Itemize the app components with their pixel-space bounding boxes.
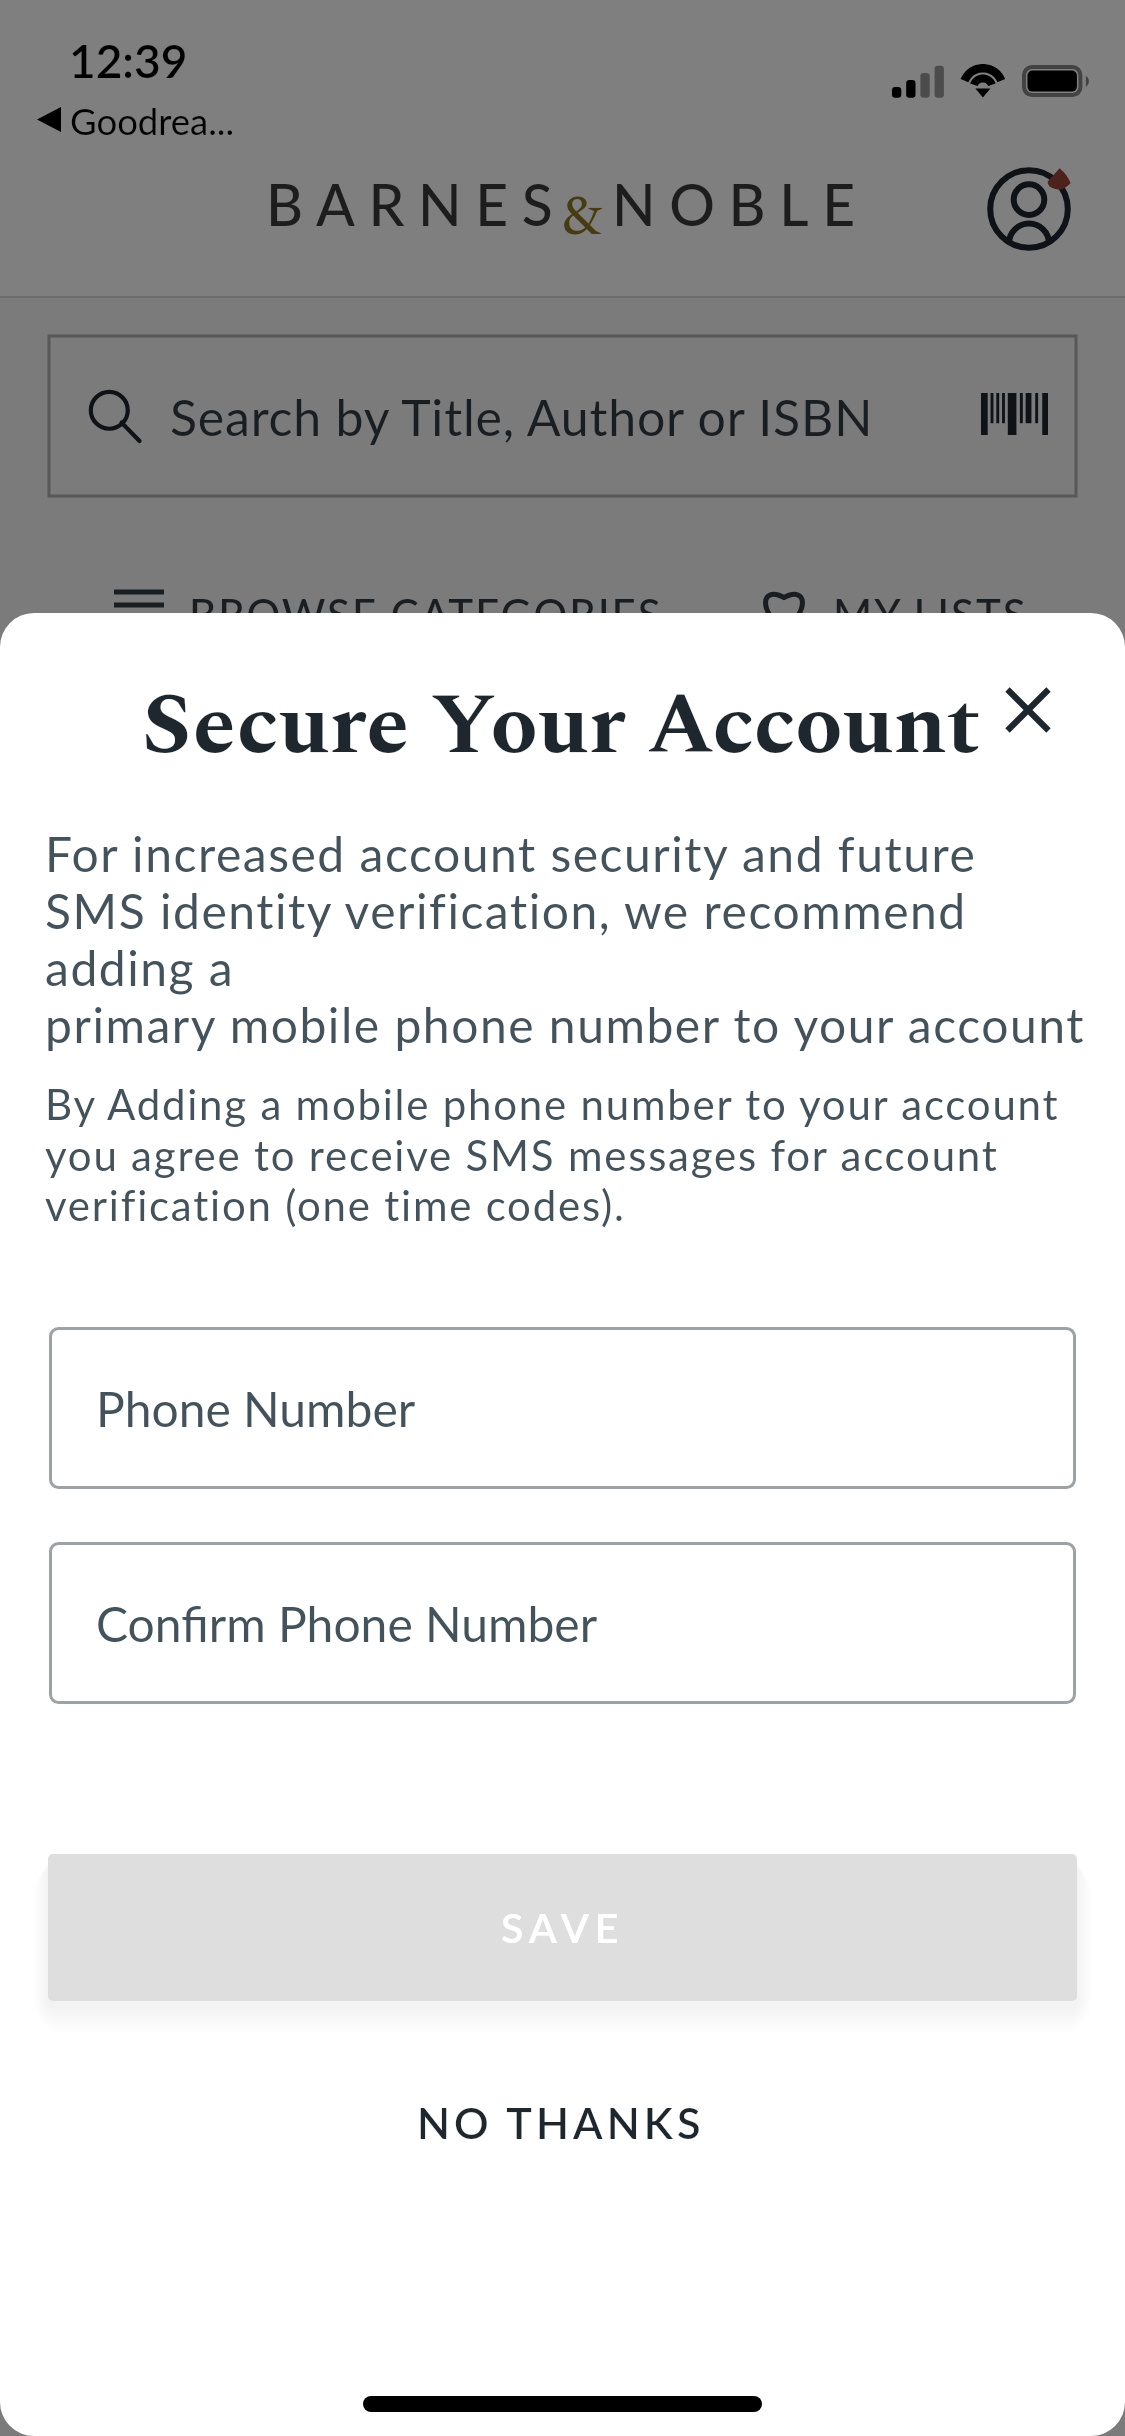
staticText: BROWSE CATEGORIES [189,589,663,639]
button[interactable]: Phone Number [49,1327,1076,1489]
button[interactable]: NO THANKS [358,2083,763,2163]
staticText: MY LISTS [833,589,1028,639]
button[interactable]: Search [49,336,1076,496]
staticText: SAVE [501,1903,625,1952]
staticText: BARNES [266,170,567,238]
staticText: & [563,175,602,260]
staticText: Secure Your Account [142,660,981,792]
button[interactable]: Account [975,152,1091,268]
staticText: For increased account security and futur… [45,825,1085,1053]
button[interactable]: Close [991,673,1065,747]
staticText: 12:39 [69,33,188,88]
staticText: Search by Title, Author or ISBN [170,387,874,447]
staticText: Confirm Phone Number [96,1595,598,1653]
staticText: Goodrea... [70,99,235,143]
staticText: By Adding a mobile phone number to your … [45,1079,1060,1229]
staticText: Phone Number [96,1380,416,1438]
staticText: NOBLE [612,170,869,238]
staticText: NO THANKS [417,2097,705,2149]
button[interactable]: Confirm Phone Number [49,1542,1076,1704]
